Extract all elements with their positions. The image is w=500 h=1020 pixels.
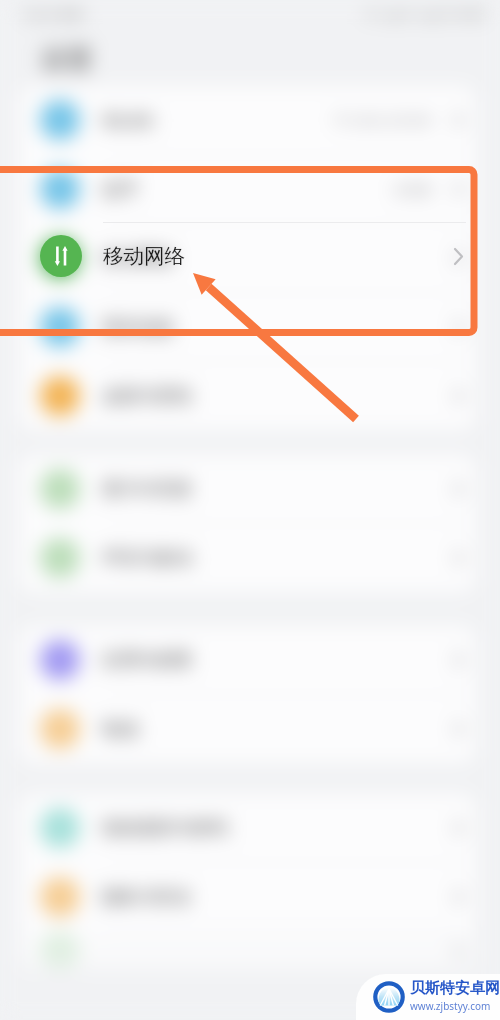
button[interactable]: 指纹面部与密码 <box>19 794 476 862</box>
staticText: 应用与权限 <box>102 649 192 672</box>
button[interactable] <box>19 932 476 970</box>
button[interactable]: 隐私与安全 <box>19 863 476 931</box>
button[interactable]: 更多连接 <box>19 293 476 361</box>
staticText: 桌面与壁纸 <box>102 385 192 408</box>
staticText: 指纹面部与密码 <box>102 817 228 840</box>
button[interactable]: 显示与亮度 <box>19 455 476 523</box>
button[interactable]: 移动网络 <box>19 224 476 292</box>
button[interactable]: 电池 <box>19 695 476 763</box>
staticText: 显示与亮度 <box>102 478 192 501</box>
button[interactable]: WLAN <box>19 86 476 154</box>
staticText: 移动网络 <box>103 243 185 269</box>
staticText: 蓝牙 <box>102 178 138 201</box>
staticText: 移动网络 <box>102 247 174 270</box>
staticText: 隐私与安全 <box>102 886 192 909</box>
button[interactable]: 蓝牙 <box>19 155 476 223</box>
button[interactable]: 桌面与壁纸 <box>19 362 476 430</box>
button[interactable]: 声音与振动 <box>19 524 476 592</box>
staticText: 贝斯特安卓网 <box>410 979 500 998</box>
staticText: WLAN <box>102 108 154 133</box>
staticText: 声音与振动 <box>102 547 192 570</box>
staticText: 设置 <box>41 43 93 76</box>
staticText: 更多连接 <box>102 316 174 339</box>
staticText: 电池 <box>102 718 138 741</box>
button[interactable]: 移动网络 <box>19 222 476 290</box>
staticText: www.zjbstyy.com <box>410 999 491 1013</box>
button[interactable]: 应用与权限 <box>19 626 476 694</box>
